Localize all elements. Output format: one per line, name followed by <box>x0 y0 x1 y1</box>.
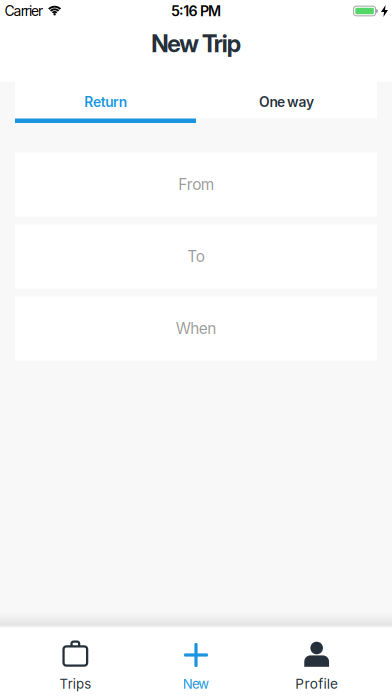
staticText: To <box>187 247 205 266</box>
staticText: New <box>183 676 209 692</box>
button[interactable]: From <box>15 152 377 216</box>
staticText: Trips <box>59 676 91 692</box>
staticText: Profile <box>295 675 338 692</box>
button[interactable]: One way <box>196 81 377 118</box>
staticText: Carrier <box>4 3 43 19</box>
button[interactable]: To <box>15 224 377 288</box>
button[interactable]: Profile <box>256 628 377 696</box>
button[interactable]: New <box>136 628 256 696</box>
staticText: One way <box>259 94 314 110</box>
staticText: 5:16 PM <box>171 2 221 20</box>
button[interactable]: Trips <box>15 628 136 696</box>
button[interactable]: Return <box>15 81 196 118</box>
staticText: When <box>176 319 216 338</box>
staticText: Return <box>84 94 127 110</box>
staticText: From <box>178 175 214 194</box>
button[interactable]: When <box>15 296 377 360</box>
staticText: New Trip <box>151 29 241 58</box>
